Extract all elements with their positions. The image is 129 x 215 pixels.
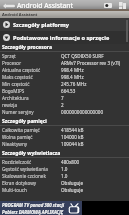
button[interactable]: Procesor <box>0 59 129 66</box>
staticText: Aktualna częstość <box>2 67 61 73</box>
staticText: 7 <box>61 95 127 101</box>
staticText: Szczegóły wyświetlacza <box>2 150 61 157</box>
button[interactable]: Nieaktywny <box>0 140 129 147</box>
staticText: QCT QSD8X50 SURF <box>61 53 127 59</box>
staticText: Min częstość <box>2 81 61 87</box>
button[interactable]: Toggle <box>101 0 115 11</box>
button[interactable]: Szczegóły platformy <box>0 18 129 31</box>
staticText: BogoMIPS <box>2 88 61 94</box>
staticText: Gęstość wyświetlania <box>2 166 61 172</box>
staticText: Wolna pamięć <box>2 134 61 140</box>
staticText: 664.53 <box>61 88 127 94</box>
button[interactable]: Maks częstość <box>0 73 129 80</box>
staticText: 998.4 MHz <box>61 74 127 80</box>
staticText: PROGRAM TV ponad 300 stacji <box>2 202 65 208</box>
button[interactable]: Multi-touch <box>0 186 129 193</box>
staticText: Obsługuje <box>61 180 127 186</box>
staticText: Android Assistant <box>2 12 38 17</box>
staticText: Pobierz DARMOWĄ APLIKACJĘ <box>2 209 64 215</box>
button[interactable]: Numer seryjny <box>0 108 129 115</box>
staticText: Szczegóły platformy <box>13 21 69 29</box>
staticText: 1.0 <box>61 173 127 179</box>
staticText: 104000 kB <box>61 134 127 140</box>
staticText: 0000000000000000 <box>61 109 127 115</box>
staticText: Szczegóły procesora <box>2 44 52 51</box>
button[interactable]: PROGRAM TV ponad 300 stacji <box>0 201 82 215</box>
button[interactable]: Aktualna częstość <box>0 66 129 73</box>
staticText: Rozdzielczość <box>2 159 61 165</box>
staticText: Maks częstość <box>2 74 61 80</box>
button[interactable]: Back <box>0 0 17 11</box>
button[interactable]: rewizja <box>0 101 129 108</box>
button[interactable]: Całkowita pamięć <box>0 126 129 133</box>
button[interactable]: Gęstość wyświetlania <box>0 165 129 172</box>
staticText: Obsługuje <box>61 187 127 193</box>
button[interactable]: Rozdzielczość <box>0 158 129 165</box>
button[interactable]: Min częstość <box>0 80 129 87</box>
button[interactable]: Wolna pamięć <box>0 133 129 140</box>
staticText: 2 <box>61 102 127 108</box>
staticText: Multi-touch <box>2 187 61 193</box>
button[interactable]: Architektura <box>0 94 129 101</box>
staticText: Sprzęt <box>2 53 61 59</box>
staticText: 1.0 <box>61 166 127 172</box>
staticText: Numer seryjny <box>2 109 61 115</box>
button[interactable]: Ekran dotykowy <box>0 179 129 186</box>
staticText: 998.4 MHz <box>61 67 127 73</box>
staticText: Nieaktywny <box>2 141 61 147</box>
button[interactable]: Sprzęt <box>0 52 129 59</box>
button[interactable]: Skalowanie czcionek <box>0 172 129 179</box>
staticText: Architektura <box>2 95 61 101</box>
staticText: 418544 kB <box>61 127 127 133</box>
button[interactable]: Podstawowe informacje o sprzęcie <box>0 31 129 44</box>
staticText: Ekran dotykowy <box>2 180 61 186</box>
staticText: rewizja <box>2 102 61 108</box>
staticText: Android Assistant <box>17 1 73 10</box>
button[interactable]: Apps <box>115 0 129 11</box>
staticText: 245.76 MHz <box>61 81 127 87</box>
staticText: Procesor <box>2 60 61 66</box>
staticText: Podstawowe informacje o sprzęcie <box>13 34 110 42</box>
staticText: Całkowita pamięć <box>2 127 61 133</box>
staticText: Szczegóły pamięci <box>2 118 47 125</box>
staticText: ARMv7 Processor rev 3 (v7l) <box>61 60 127 66</box>
staticText: Skalowanie czcionek <box>2 173 61 179</box>
staticText: 480x800 <box>61 159 127 165</box>
staticText: 109044 kB <box>61 141 127 147</box>
button[interactable]: BogoMIPS <box>0 87 129 94</box>
